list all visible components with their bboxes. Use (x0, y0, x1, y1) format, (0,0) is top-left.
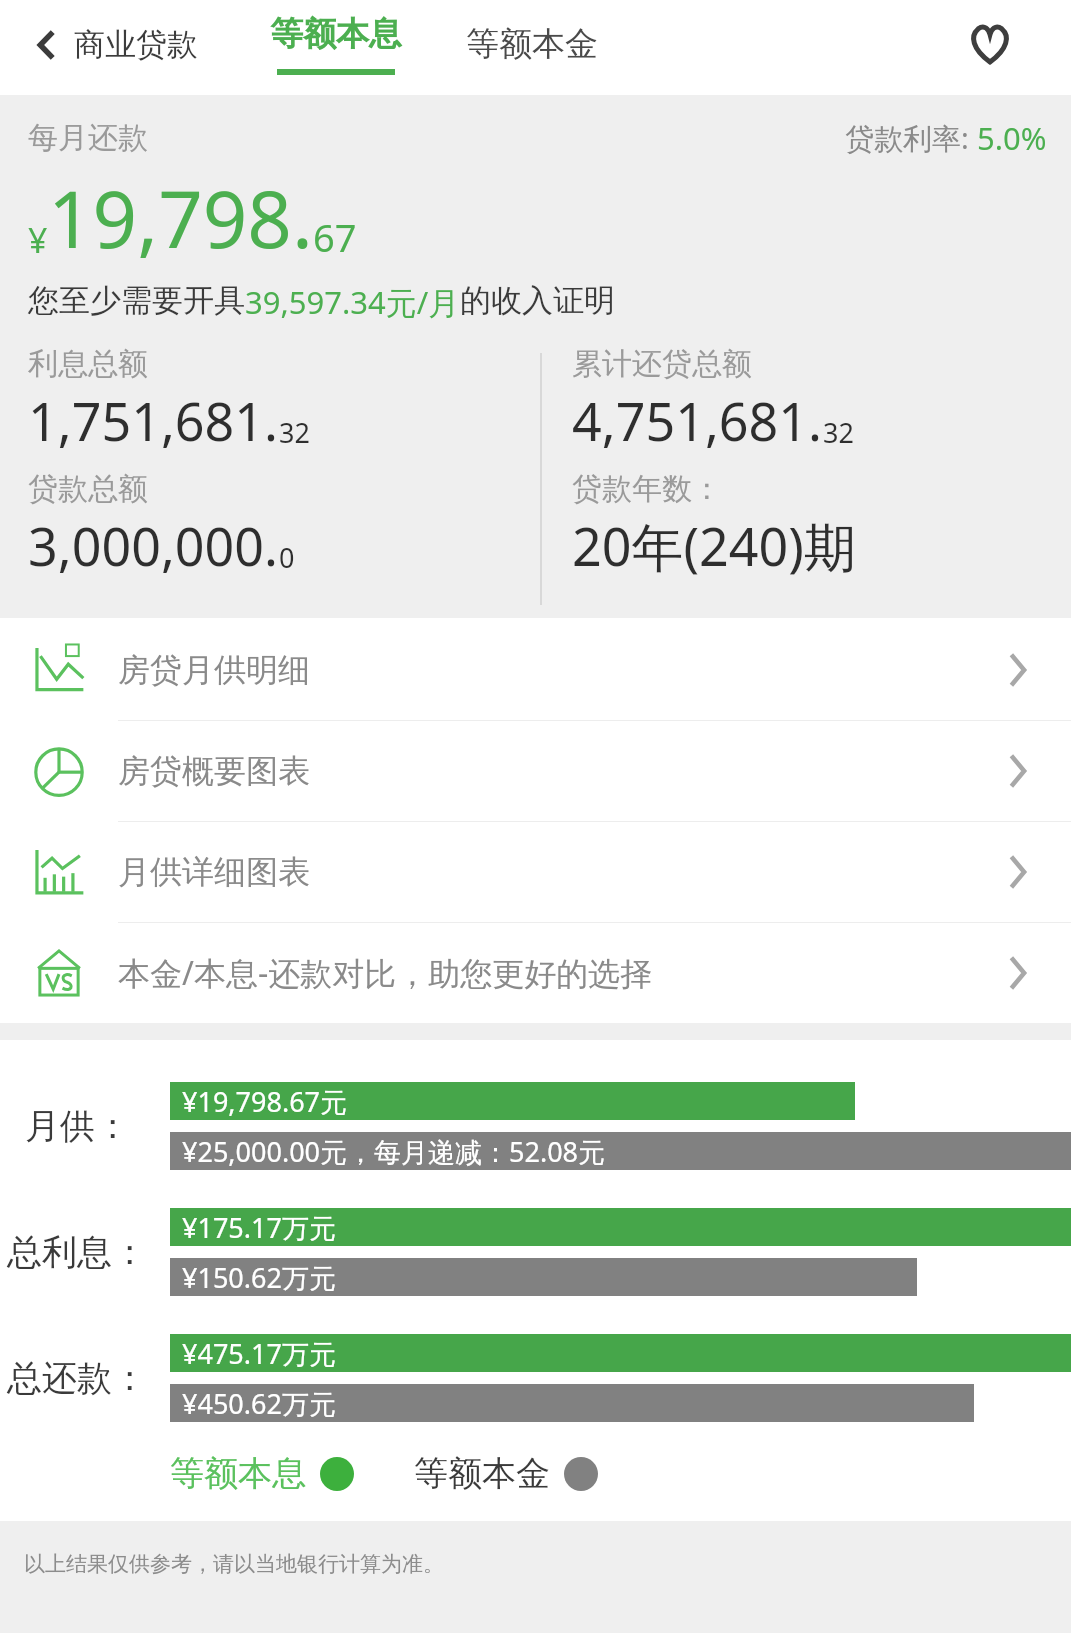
staticText: 以上结果仅供参考，请以当地银行计算为准。 (24, 1551, 444, 1577)
button[interactable]: 房贷概要图表 (0, 721, 1071, 821)
button[interactable]: 月供详细图表 (0, 822, 1071, 922)
button[interactable]: 等额本金 (460, 15, 604, 73)
button[interactable]: 等额本金 (414, 1452, 598, 1495)
other: Back (34, 28, 60, 62)
staticText: 等额本金 (466, 23, 598, 65)
button[interactable]: Back (0, 17, 208, 72)
staticText: 32 (279, 414, 310, 451)
staticText: 贷款利率: (845, 118, 969, 158)
staticText: ¥175.17万元 (182, 1209, 336, 1246)
staticText: 3,000,000. (28, 510, 279, 581)
staticText: 20年(240)期 (572, 510, 856, 581)
staticText: 32 (823, 414, 854, 451)
staticText: 19,798. (48, 165, 313, 271)
staticText: ¥25,000.00元，每月递减：52.08元 (182, 1133, 606, 1170)
staticText: 月供详细图表 (118, 852, 310, 892)
staticText: 贷款总额 (28, 470, 148, 508)
staticText: 您至少需要开具 (28, 281, 245, 320)
staticText: 总还款： (7, 1356, 147, 1400)
staticText: 的收入证明 (460, 281, 615, 320)
staticText: 每月还款 (28, 119, 148, 157)
staticText: 商业贷款 (74, 25, 198, 64)
staticText: 房贷月供明细 (118, 650, 310, 690)
staticText: 累计还贷总额 (572, 345, 752, 383)
staticText: 房贷概要图表 (118, 751, 310, 791)
staticText: 0 (279, 539, 295, 576)
button[interactable]: 等额本息 (264, 13, 408, 75)
staticText: ¥150.62万元 (182, 1259, 336, 1296)
staticText: 4,751,681. (572, 385, 823, 456)
staticText: 等额本息 (270, 13, 402, 55)
staticText: 39,597.34元/月 (245, 281, 460, 323)
staticText: 1,751,681. (28, 385, 279, 456)
button[interactable]: Favorite (969, 24, 1071, 64)
staticText: 月供： (25, 1104, 130, 1148)
button[interactable]: 房贷月供明细 (0, 620, 1071, 720)
staticText: 5.0% (977, 117, 1047, 159)
staticText: ¥450.62万元 (182, 1385, 336, 1422)
staticText: 贷款年数： (572, 470, 722, 508)
staticText: 等额本金 (414, 1452, 550, 1495)
staticText: 67 (313, 211, 357, 263)
button[interactable]: 等额本息 (170, 1452, 354, 1495)
staticText: ¥ (28, 217, 48, 263)
staticText: 等额本息 (170, 1452, 306, 1495)
staticText: 本金/本息-还款对比，助您更好的选择 (118, 951, 653, 995)
staticText: 总利息： (7, 1230, 147, 1274)
staticText: 利息总额 (28, 345, 148, 383)
button[interactable]: 本金/本息-还款对比，助您更好的选择 (0, 923, 1071, 1023)
staticText: ¥475.17万元 (182, 1335, 336, 1372)
staticText: ¥19,798.67元 (182, 1083, 348, 1120)
